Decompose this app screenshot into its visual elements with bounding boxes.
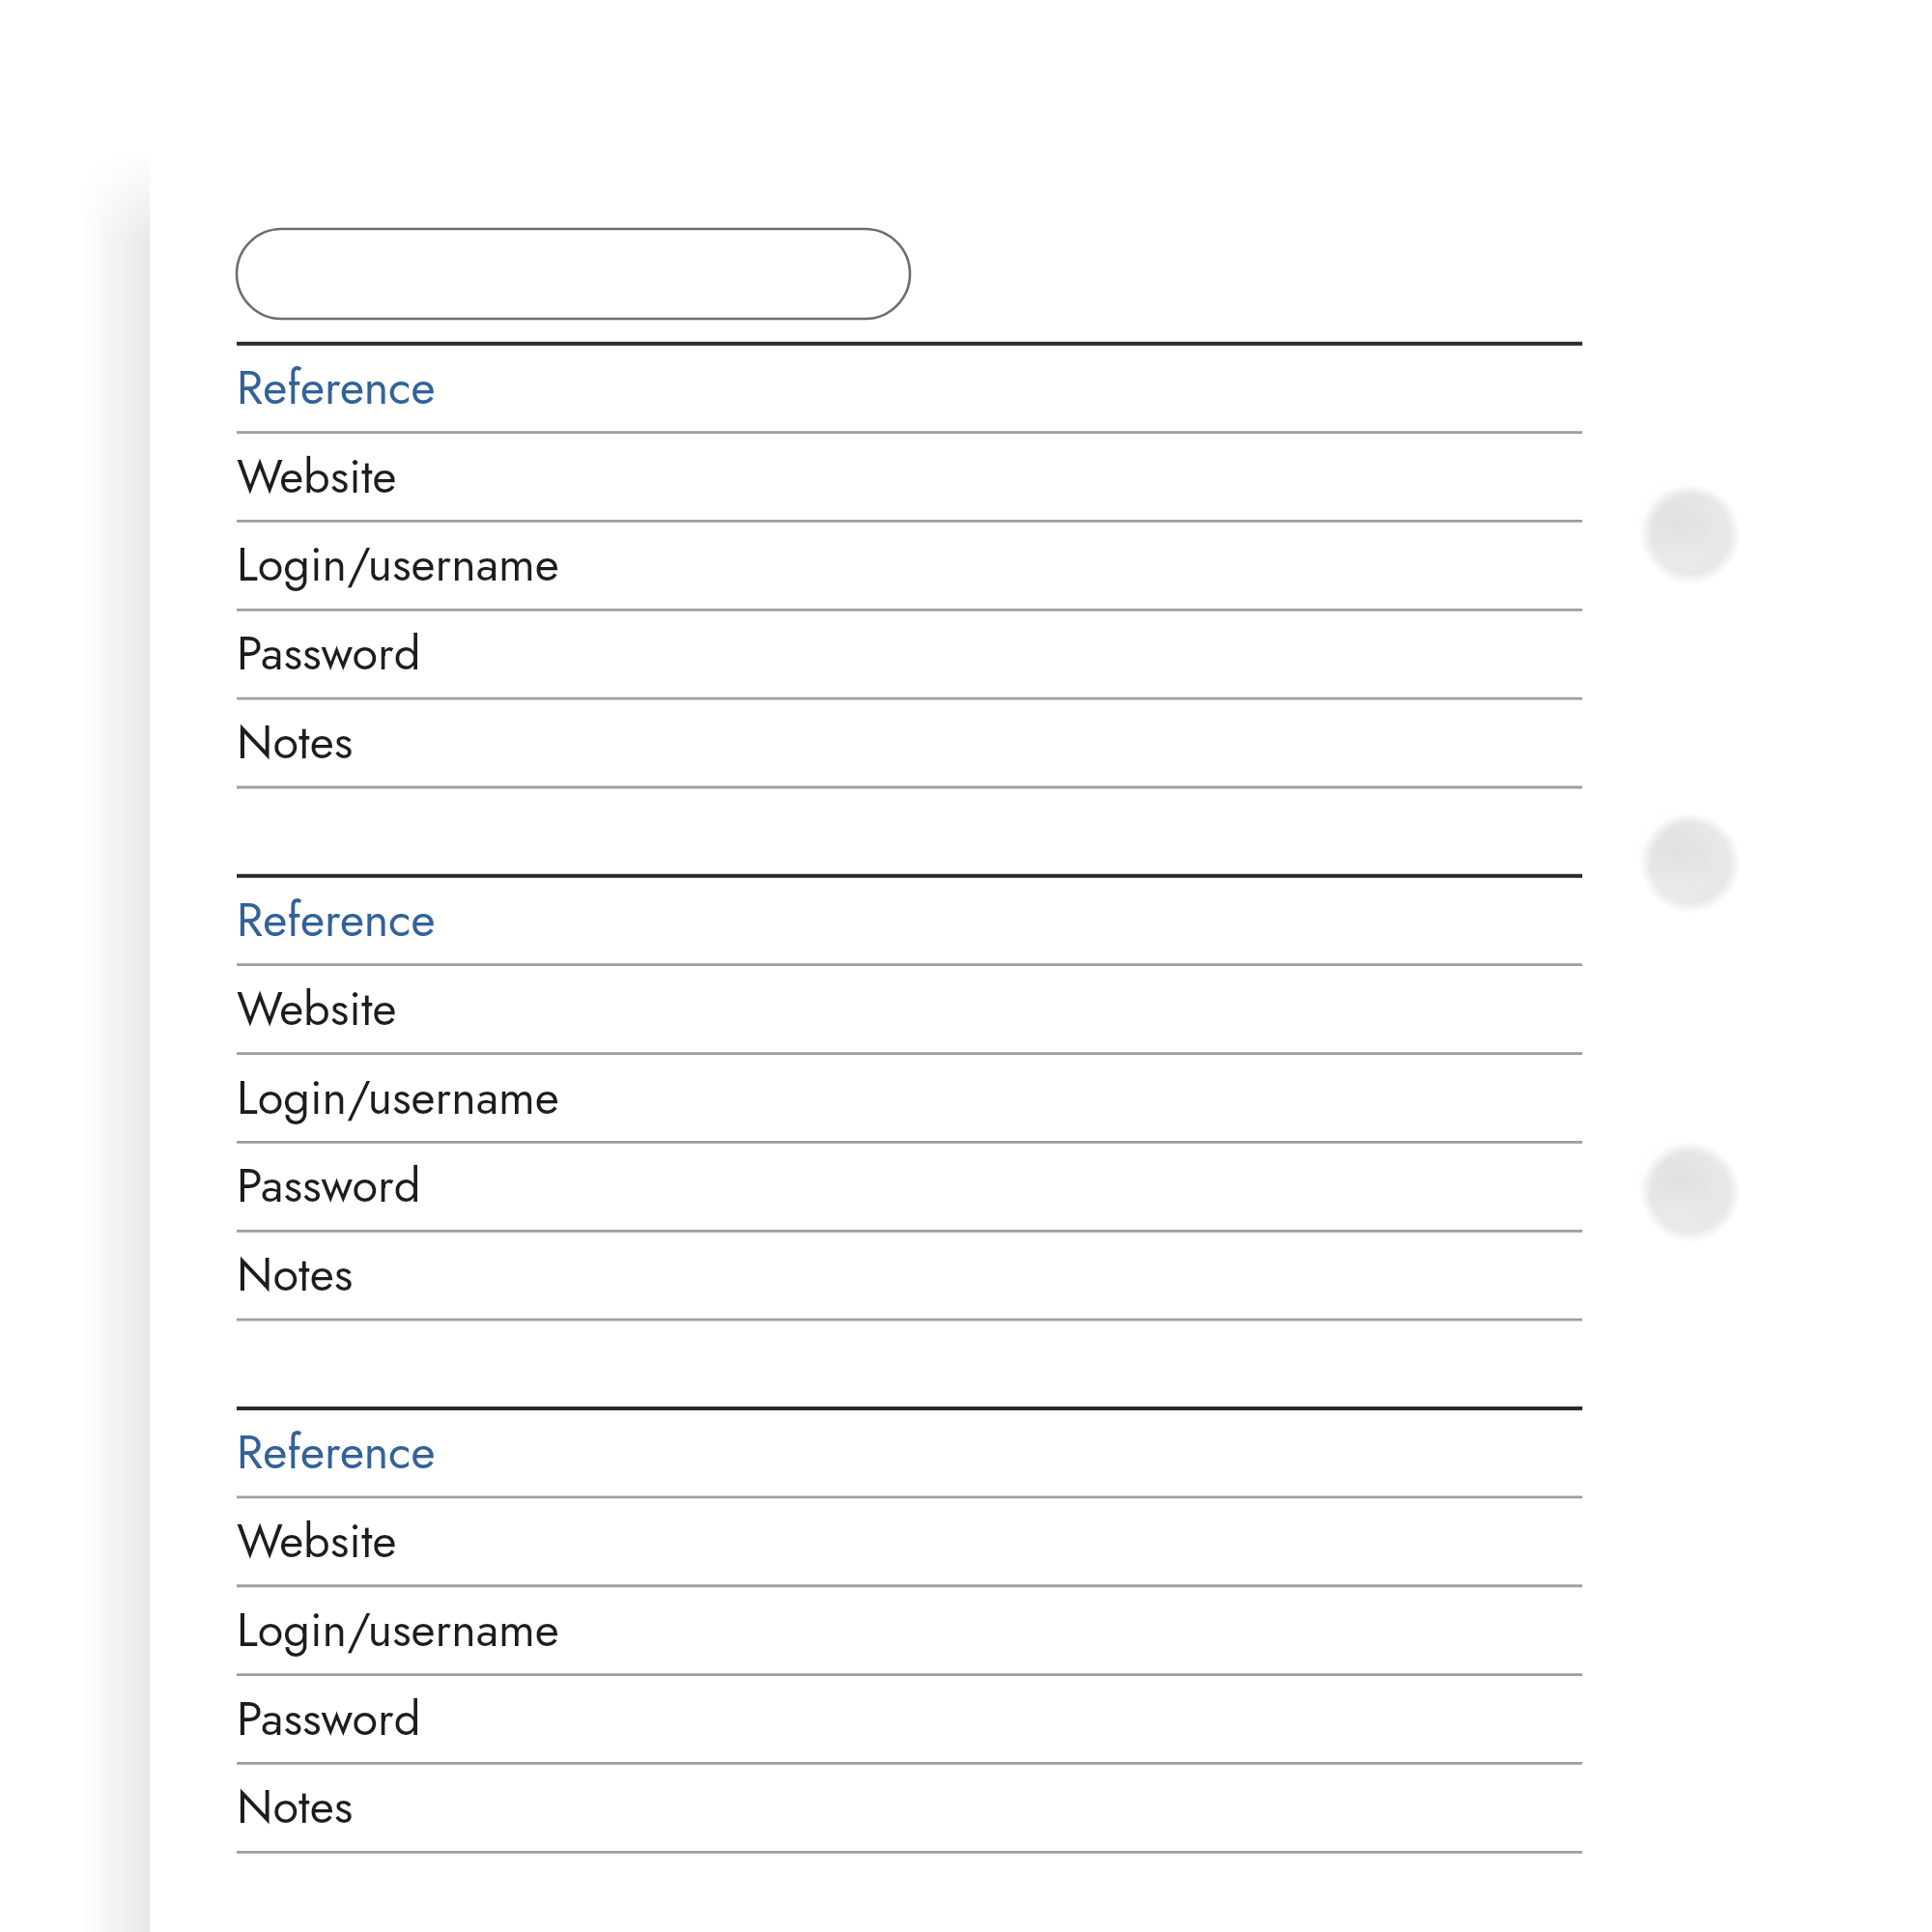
button[interactable]: Website	[237, 1497, 1582, 1586]
button[interactable]: Password	[237, 1675, 1582, 1764]
button[interactable]: Website	[237, 965, 1582, 1054]
staticText: Reference	[237, 354, 436, 421]
button[interactable]: Login/username	[237, 521, 1582, 610]
staticText: Reference	[237, 1418, 436, 1486]
button[interactable]: Page title field	[237, 229, 910, 319]
staticText: Website	[237, 1507, 397, 1575]
staticText: Login/username	[237, 1596, 559, 1663]
staticText: Website	[237, 975, 397, 1042]
staticText: Password	[237, 1685, 421, 1752]
button[interactable]: Login/username	[237, 1586, 1582, 1675]
staticText: Login/username	[237, 530, 559, 598]
button[interactable]: Reference	[237, 344, 1582, 433]
staticText: Password	[237, 619, 421, 687]
staticText: Notes	[237, 1773, 354, 1840]
button[interactable]: Reference	[237, 1408, 1582, 1497]
button[interactable]: Notes	[237, 698, 1582, 787]
staticText: Notes	[237, 708, 354, 776]
button[interactable]: Notes	[237, 1231, 1582, 1320]
button[interactable]: Reference	[237, 876, 1582, 965]
staticText: Password	[237, 1151, 421, 1219]
button[interactable]: Password	[237, 1142, 1582, 1231]
staticText: Website	[237, 442, 397, 510]
button[interactable]: Notes	[237, 1763, 1582, 1852]
button[interactable]: Website	[237, 433, 1582, 522]
staticText: Notes	[237, 1240, 354, 1308]
staticText: Login/username	[237, 1064, 559, 1131]
staticText: Reference	[237, 886, 436, 953]
button[interactable]: Password	[237, 610, 1582, 698]
button[interactable]: Login/username	[237, 1054, 1582, 1143]
